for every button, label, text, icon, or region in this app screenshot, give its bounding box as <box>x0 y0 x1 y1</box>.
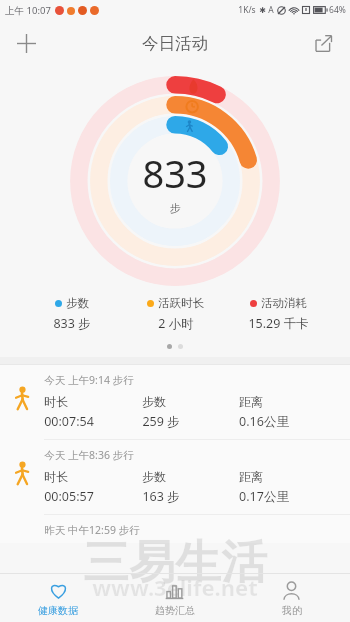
staticText: 1K/s <box>238 4 256 16</box>
staticText: A <box>268 4 274 16</box>
staticText: 833 <box>142 147 208 199</box>
staticText: 时长 <box>44 394 68 409</box>
staticText: 今天 上午9:14 步行 <box>44 373 134 387</box>
staticText: 步数 <box>142 394 166 409</box>
staticText: 活跃时长 <box>158 296 204 310</box>
staticText: 0.17公里 <box>239 488 289 505</box>
staticText: 64% <box>329 4 346 16</box>
staticText: 上午 10:07 <box>5 4 51 17</box>
button[interactable]: 活跃时长 <box>124 296 227 332</box>
staticText: 时长 <box>44 469 68 484</box>
button[interactable]: Share <box>305 25 341 61</box>
staticText: www.3elife.net <box>92 572 258 602</box>
button[interactable]: 活动消耗 <box>227 296 330 332</box>
staticText: ✱ <box>259 6 266 15</box>
staticText: 步数 <box>142 469 166 484</box>
button[interactable]: Add <box>8 25 44 61</box>
button[interactable]: 昨天 中午12:59 步行 <box>0 515 350 543</box>
staticText: 步数 <box>66 296 89 310</box>
staticText: 00:07:54 <box>44 413 94 430</box>
staticText: 距离 <box>239 469 263 484</box>
staticText: 259 步 <box>142 413 180 430</box>
staticText: 今天 上午8:36 步行 <box>44 448 134 462</box>
staticText: 距离 <box>239 394 263 409</box>
staticText: 163 步 <box>142 488 180 505</box>
staticText: 15.29 千卡 <box>248 315 309 332</box>
staticText: 趋势汇总 <box>155 604 195 617</box>
button[interactable]: 今天 上午8:36 步行 <box>0 440 350 515</box>
button[interactable]: 我的 <box>233 574 350 622</box>
staticText: 833 步 <box>53 315 91 332</box>
staticText: 0.16公里 <box>239 413 289 430</box>
staticText: 昨天 中午12:59 步行 <box>44 523 140 537</box>
staticText: 00:05:57 <box>44 488 94 505</box>
staticText: 健康数据 <box>38 604 78 617</box>
staticText: 2 小时 <box>158 315 194 332</box>
staticText: 步 <box>170 201 181 215</box>
button[interactable]: 步数 <box>20 296 124 332</box>
staticText: 三易生活 <box>83 534 267 592</box>
button[interactable]: 今天 上午9:14 步行 <box>0 365 350 440</box>
staticText: 活动消耗 <box>261 296 307 310</box>
button[interactable]: 健康数据 <box>0 574 116 622</box>
staticText: 今日活动 <box>142 33 208 54</box>
button[interactable]: 趋势汇总 <box>116 574 233 622</box>
staticText: 我的 <box>282 604 302 617</box>
